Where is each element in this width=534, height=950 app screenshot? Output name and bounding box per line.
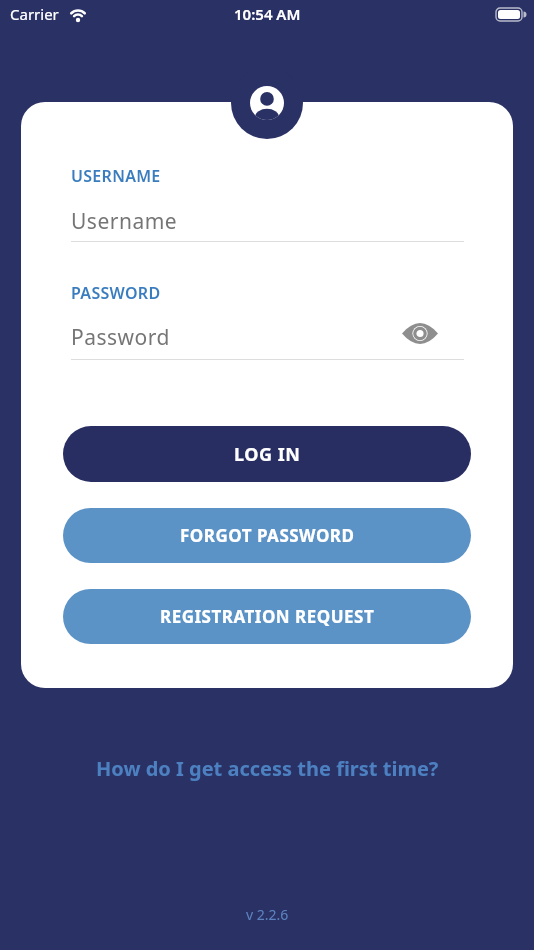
staticText: PASSWORD: [71, 282, 161, 304]
staticText: FORGOT PASSWORD: [180, 524, 355, 547]
button[interactable]: How do I get access the first time?: [0, 755, 534, 782]
staticText: Carrier: [10, 4, 59, 24]
staticText: v 2.2.6: [246, 905, 289, 924]
staticText: Password: [71, 323, 170, 352]
staticText: USERNAME: [71, 165, 161, 187]
staticText: 10:54 AM: [234, 4, 301, 24]
button[interactable]: REGISTRATION REQUEST: [63, 589, 471, 644]
button[interactable]: FORGOT PASSWORD: [63, 508, 471, 563]
button[interactable]: [398, 319, 442, 347]
button[interactable]: LOG IN: [63, 426, 471, 482]
staticText: Username: [71, 207, 178, 236]
staticText: How do I get access the first time?: [96, 755, 439, 782]
staticText: REGISTRATION REQUEST: [160, 605, 375, 628]
staticText: LOG IN: [234, 442, 301, 467]
